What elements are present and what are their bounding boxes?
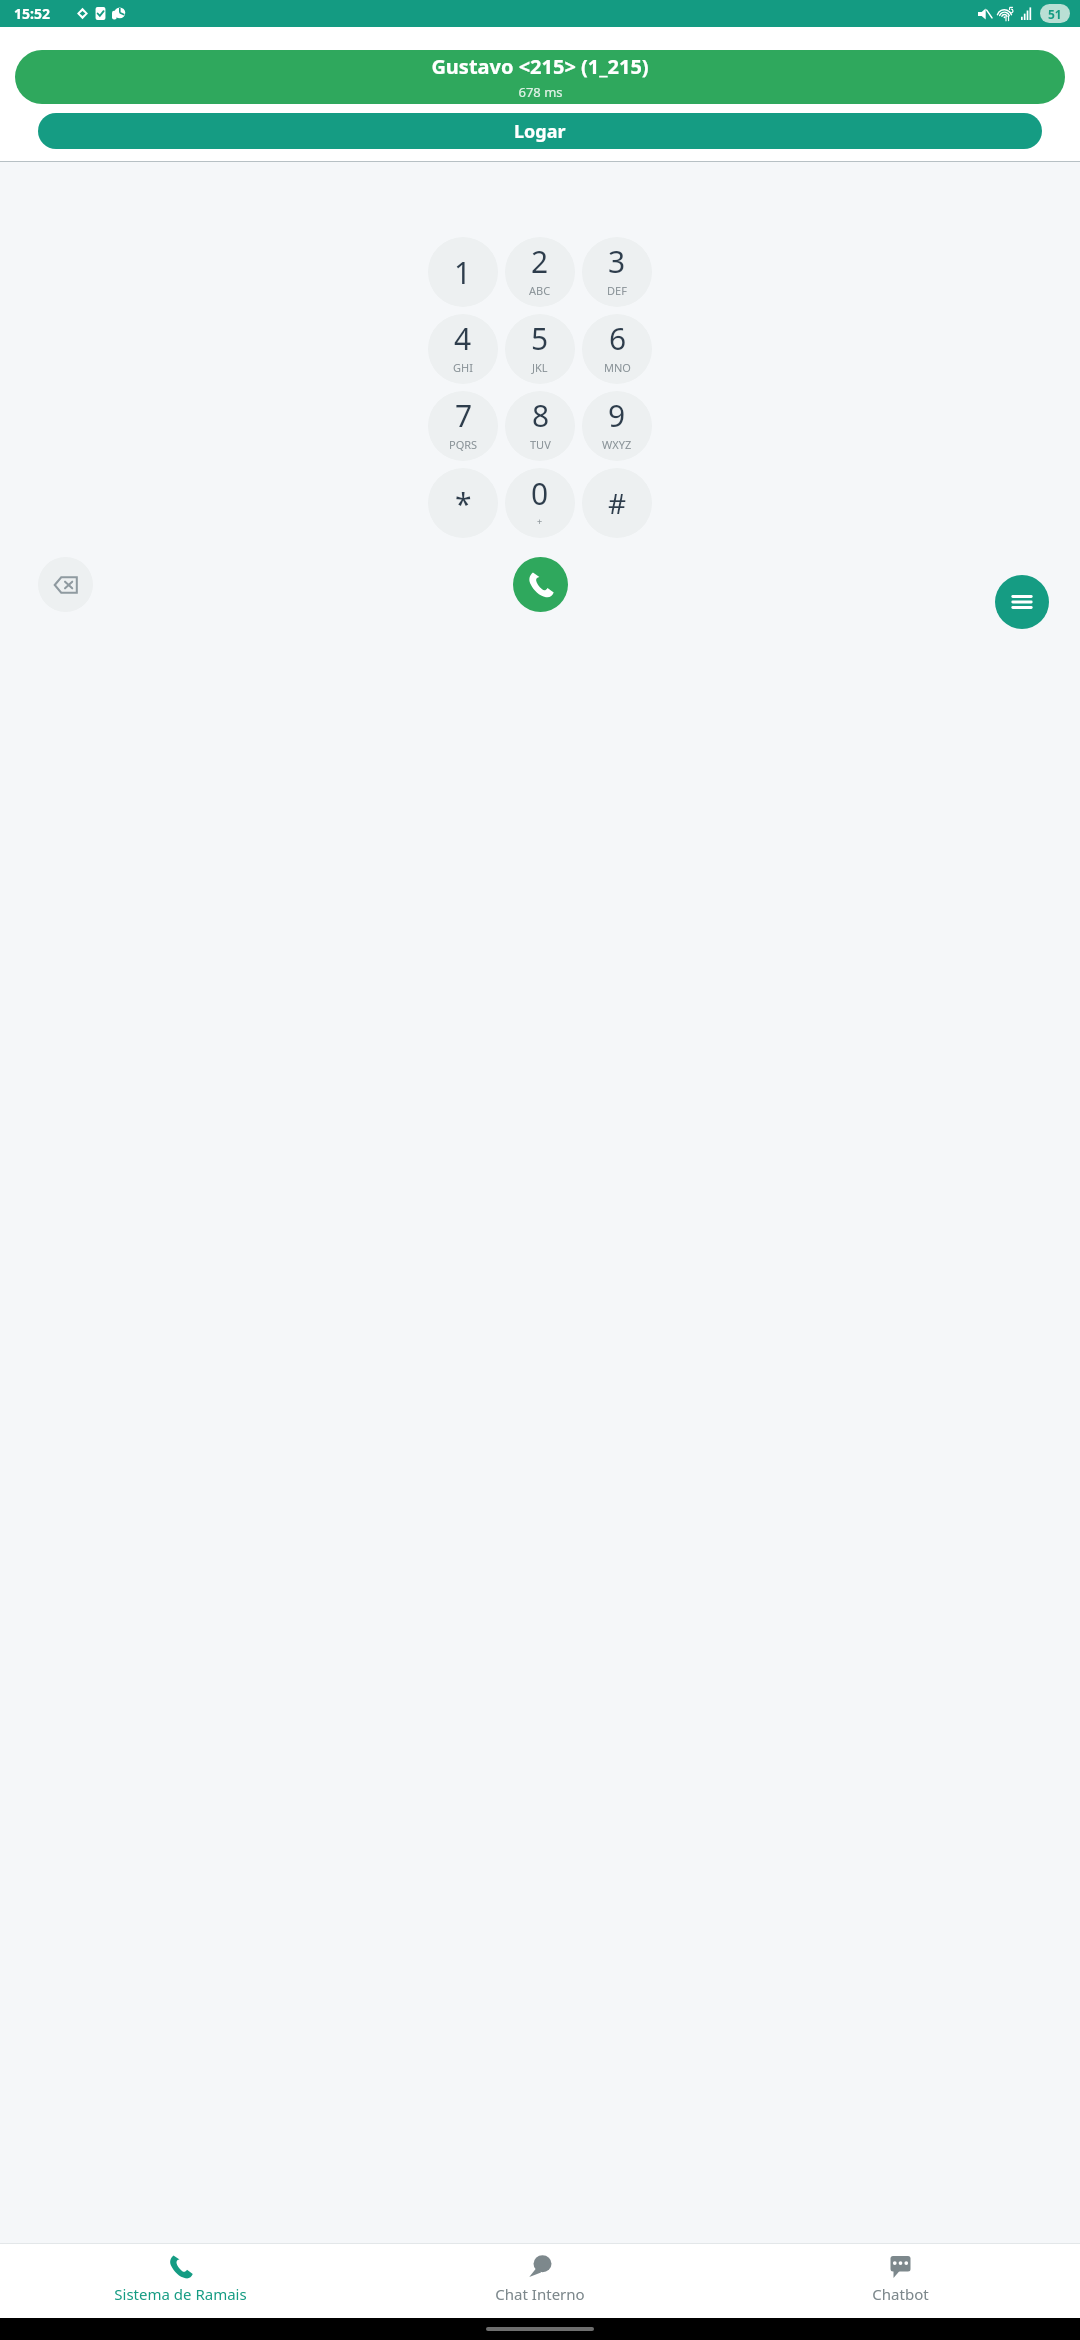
button[interactable]: # — [582, 468, 652, 538]
staticText: PQRS — [449, 437, 478, 452]
button[interactable]: Gustavo <215> (1_215) — [15, 50, 1065, 104]
staticText: 15:52 — [14, 4, 50, 23]
button[interactable]: 7 — [428, 391, 498, 461]
staticText: Sistema de Ramais — [114, 2284, 247, 2304]
button[interactable]: 2 — [505, 237, 575, 307]
staticText: Gustavo <215> (1_215) — [431, 53, 649, 80]
button[interactable]: Call — [513, 557, 568, 612]
staticText: 9 — [608, 395, 626, 436]
button[interactable]: * — [428, 468, 498, 538]
staticText: GHI — [453, 360, 473, 375]
button[interactable]: Chatbot — [720, 2244, 1080, 2318]
staticText: JKL — [532, 360, 548, 375]
button[interactable]: 4 — [428, 314, 498, 384]
button[interactable]: 9 — [582, 391, 652, 461]
button[interactable]: Logar — [38, 113, 1042, 149]
staticText: * — [455, 483, 472, 524]
staticText: # — [608, 484, 627, 522]
button[interactable]: Chat Interno — [360, 2244, 720, 2318]
staticText: 3 — [608, 241, 626, 282]
staticText: ABC — [529, 283, 551, 298]
button[interactable]: 1 — [428, 237, 498, 307]
staticText: 5 — [531, 318, 549, 359]
button[interactable]: 3 — [582, 237, 652, 307]
staticText: + — [537, 515, 543, 527]
button[interactable]: 8 — [505, 391, 575, 461]
staticText: 1 — [454, 252, 472, 293]
staticText: TUV — [530, 437, 551, 452]
staticText: DEF — [607, 283, 627, 298]
button[interactable]: Backspace — [38, 557, 93, 612]
staticText: Chatbot — [872, 2284, 929, 2304]
staticText: 8 — [532, 395, 550, 436]
staticText: Logar — [514, 119, 566, 144]
staticText: 6 — [609, 318, 627, 359]
staticText: 2 — [531, 241, 549, 282]
button[interactable]: Sistema de Ramais — [0, 2244, 360, 2318]
staticText: WXYZ — [602, 437, 632, 452]
staticText: 0 — [531, 473, 549, 514]
staticText: 4 — [454, 318, 472, 359]
staticText: 51 — [1048, 6, 1062, 22]
staticText: Chat Interno — [495, 2284, 585, 2304]
staticText: 7 — [455, 395, 473, 436]
button[interactable]: 5 — [505, 314, 575, 384]
staticText: 678 ms — [518, 83, 563, 101]
button[interactable]: 6 — [582, 314, 652, 384]
button[interactable]: 0 — [505, 468, 575, 538]
staticText: MNO — [604, 360, 631, 375]
button[interactable]: Menu — [995, 575, 1049, 629]
